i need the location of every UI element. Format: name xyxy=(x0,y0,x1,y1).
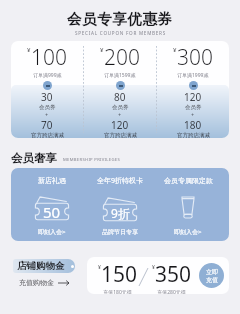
button[interactable]: 新店礼遇 xyxy=(18,168,86,241)
button[interactable]: 店铺购物金 xyxy=(13,259,75,273)
staticText: 50 xyxy=(43,202,61,222)
button[interactable]: 会员专属限定款 xyxy=(154,168,222,241)
staticText: ¥ xyxy=(100,46,104,54)
staticText: 100 xyxy=(31,43,67,72)
button[interactable]: 立即 xyxy=(199,263,224,288)
staticText: 充值280元得 xyxy=(157,289,186,294)
staticText: 会员专享优惠券 xyxy=(67,10,173,28)
button[interactable]: ¥ xyxy=(87,257,229,294)
staticText: + xyxy=(118,111,122,118)
button[interactable]: ¥ xyxy=(157,41,229,138)
staticText: 新店礼遇 xyxy=(38,176,66,185)
staticText: + xyxy=(45,111,49,118)
staticText: 会员专属限定款 xyxy=(164,176,213,185)
staticText: 官方跨店满减 xyxy=(104,132,137,138)
staticText: 即刻入会> xyxy=(174,228,202,236)
staticText: 9折 xyxy=(111,205,130,221)
staticText: 30 xyxy=(41,90,53,104)
staticText: 立即 xyxy=(206,268,218,276)
staticText: 70 xyxy=(41,118,53,132)
other: 领取 xyxy=(43,81,52,90)
staticText: 会员奢享 xyxy=(11,151,57,165)
staticText: 会员券 xyxy=(112,104,129,111)
button[interactable]: ¥ xyxy=(11,41,83,138)
button[interactable]: 全年9折特权卡 xyxy=(86,168,154,241)
staticText: 全年9折特权卡 xyxy=(97,176,144,186)
staticText: 官方跨店满减 xyxy=(177,132,210,138)
staticText: 订单满1599减 xyxy=(104,72,136,79)
staticText: ¥ xyxy=(173,46,177,54)
staticText: 350 xyxy=(155,260,192,289)
staticText: 店铺购物金 xyxy=(17,260,65,272)
staticText: MEMBERSHIP PRIVILEGES xyxy=(63,157,121,163)
staticText: 充值 xyxy=(206,276,218,284)
staticText: + xyxy=(191,111,195,118)
other: 领取 xyxy=(116,81,125,90)
staticText: 订单满999减 xyxy=(33,72,62,79)
staticText: 品牌节日专享 xyxy=(102,228,138,236)
staticText: 充值购物金 xyxy=(19,278,54,287)
staticText: 官方跨店满减 xyxy=(31,132,64,138)
staticText: 150 xyxy=(101,260,138,289)
staticText: 订单满1999减 xyxy=(177,72,209,79)
staticText: 180 xyxy=(184,118,202,132)
staticText: 会员券 xyxy=(185,104,202,111)
staticText: 即刻入会> xyxy=(38,228,66,236)
staticText: 200 xyxy=(104,43,140,72)
button[interactable]: ¥ xyxy=(84,41,156,138)
button[interactable]: 充值购物金 xyxy=(19,278,69,287)
other: 领取 xyxy=(189,81,198,90)
staticText: 80 xyxy=(114,90,126,104)
staticText: 300 xyxy=(177,43,213,72)
staticText: ¥ xyxy=(27,46,31,54)
staticText: ¥ xyxy=(152,264,155,271)
staticText: 120 xyxy=(111,118,129,132)
staticText: 会员券 xyxy=(39,104,56,111)
staticText: ¥ xyxy=(98,264,101,271)
staticText: SPECIAL COUPON FOR MEMBERS xyxy=(75,30,166,36)
staticText: 120 xyxy=(184,90,202,104)
staticText: 充值180元得 xyxy=(103,289,132,294)
